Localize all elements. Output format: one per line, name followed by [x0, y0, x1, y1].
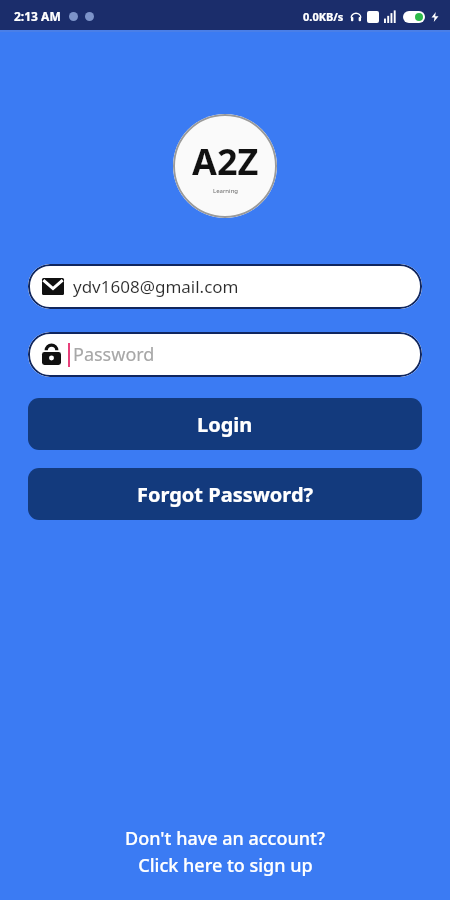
button[interactable]: Login [28, 398, 422, 450]
staticText: Don't have an account? [125, 826, 325, 851]
staticText: 0.0KB/s [303, 9, 344, 24]
staticText: ydv1608@gmail.com [73, 275, 239, 298]
staticText: 2:13 AM [14, 8, 61, 24]
button[interactable]: Don't have an account? [0, 822, 450, 882]
button[interactable]: Password [28, 332, 422, 377]
staticText: Login [197, 411, 253, 438]
button[interactable]: ydv1608@gmail.com [28, 264, 422, 309]
staticText: Learning [213, 187, 239, 195]
staticText: Click here to sign up [138, 853, 313, 878]
staticText: A2Z [192, 137, 259, 186]
staticText: Password [73, 342, 155, 367]
staticText: Forgot Password? [137, 481, 314, 508]
button[interactable]: Forgot Password? [28, 468, 422, 520]
